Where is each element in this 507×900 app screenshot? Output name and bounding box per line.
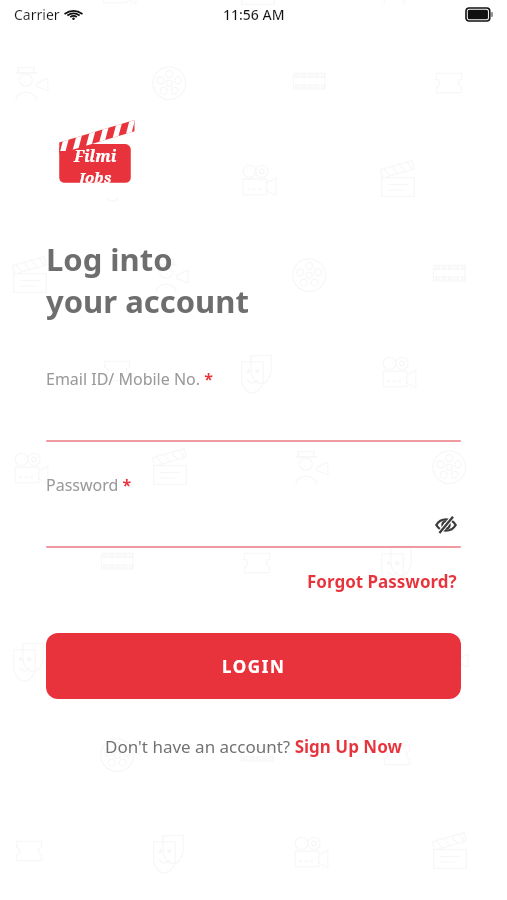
staticText: Password * <box>46 474 132 496</box>
button[interactable]: Forgot Password? <box>303 566 461 597</box>
staticText: Email ID/ Mobile No. * <box>46 368 213 390</box>
staticText: Jobs <box>79 167 112 187</box>
staticText: Don't have an account? Sign Up Now <box>105 735 402 758</box>
button[interactable]: Password * <box>46 474 461 548</box>
staticText: Log into your account <box>46 238 249 322</box>
staticText: 11:56 AM <box>223 5 285 24</box>
staticText: Forgot Password? <box>307 570 457 593</box>
button[interactable]: Don't have an account? Sign Up Now <box>46 731 461 762</box>
button[interactable]: Show password <box>431 510 461 540</box>
button[interactable]: Email ID/ Mobile No. * <box>46 368 461 442</box>
staticText: LOGIN <box>222 655 286 678</box>
staticText: Carrier <box>14 5 60 24</box>
staticText: Filmi <box>74 145 117 167</box>
button[interactable]: LOGIN <box>46 633 461 699</box>
